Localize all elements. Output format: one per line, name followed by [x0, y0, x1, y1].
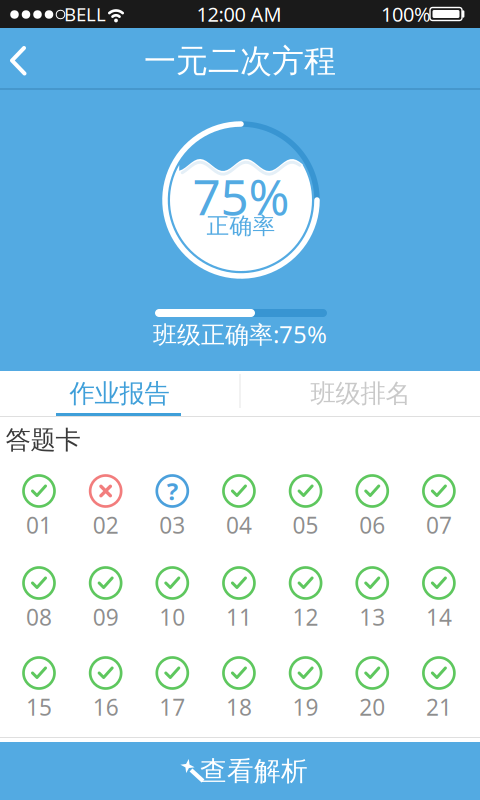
staticText: 12:00 AM: [196, 1, 281, 27]
staticText: 11: [226, 602, 252, 632]
button[interactable]: 12: [272, 567, 339, 633]
button[interactable]: ?: [139, 475, 206, 541]
button[interactable]: 15: [6, 657, 72, 723]
staticText: 20: [359, 692, 385, 722]
staticText: 答题卡: [5, 424, 80, 455]
button[interactable]: 17: [139, 657, 206, 723]
button[interactable]: 14: [406, 567, 472, 633]
staticText: 08: [26, 602, 52, 632]
staticText: 正确率: [206, 212, 275, 240]
staticText: 16: [93, 692, 119, 722]
button[interactable]: 08: [6, 567, 72, 633]
staticText: 06: [359, 510, 385, 540]
staticText: BELL: [64, 2, 106, 26]
staticText: 03: [159, 510, 185, 540]
staticText: 班级排名: [310, 378, 410, 409]
staticText: 02: [93, 510, 119, 540]
button[interactable]: 02: [72, 475, 139, 541]
staticText: 查看解析: [200, 755, 308, 787]
staticText: 13: [359, 602, 385, 632]
button[interactable]: 11: [206, 567, 272, 633]
staticText: 15: [26, 692, 52, 722]
button[interactable]: 16: [72, 657, 139, 723]
button[interactable]: 04: [206, 475, 272, 541]
button[interactable]: 查看解析: [0, 742, 480, 800]
button[interactable]: 18: [206, 657, 272, 723]
button[interactable]: 09: [72, 567, 139, 633]
staticText: 05: [293, 510, 319, 540]
button[interactable]: 06: [339, 475, 405, 541]
button[interactable]: 07: [406, 475, 472, 541]
button[interactable]: 13: [339, 567, 405, 633]
button[interactable]: 班级排名: [241, 371, 480, 416]
button[interactable]: 10: [139, 567, 206, 633]
staticText: 04: [226, 510, 252, 540]
staticText: 21: [426, 692, 452, 722]
button[interactable]: 21: [406, 657, 472, 723]
staticText: ?: [167, 475, 178, 507]
staticText: 19: [293, 692, 319, 722]
staticText: 10: [159, 602, 185, 632]
button[interactable]: Back: [4, 40, 40, 82]
staticText: 14: [426, 602, 452, 632]
staticText: 班级正确率:75%: [153, 318, 327, 350]
staticText: 作业报告: [69, 378, 169, 409]
staticText: 一元二次方程: [144, 41, 336, 81]
staticText: 100%: [381, 1, 431, 27]
staticText: 12: [293, 602, 319, 632]
button[interactable]: 01: [6, 475, 72, 541]
button[interactable]: 20: [339, 657, 405, 723]
button[interactable]: 05: [272, 475, 339, 541]
staticText: 07: [426, 510, 452, 540]
staticText: 18: [226, 692, 252, 722]
staticText: 75%: [192, 163, 289, 229]
button[interactable]: 作业报告: [0, 371, 239, 416]
staticText: 17: [159, 692, 185, 722]
staticText: 01: [26, 510, 52, 540]
button[interactable]: 19: [272, 657, 339, 723]
staticText: 09: [93, 602, 119, 632]
